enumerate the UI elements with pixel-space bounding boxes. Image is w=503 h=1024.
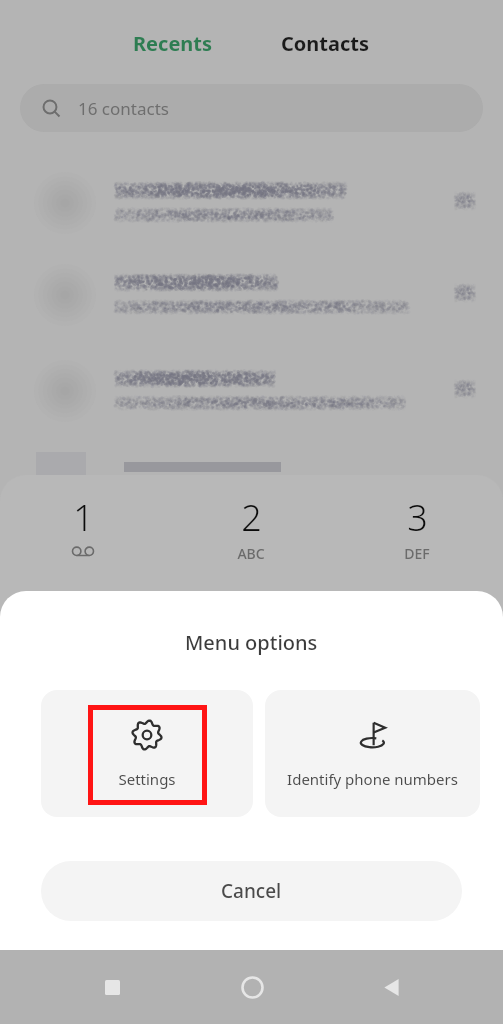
staticText: Settings xyxy=(118,769,176,789)
button[interactable]: Cancel xyxy=(41,861,462,921)
staticText: ABC xyxy=(237,544,265,563)
staticText: Contacts xyxy=(281,30,370,57)
staticText: Menu options xyxy=(185,629,318,656)
button[interactable]: 3 xyxy=(377,493,457,563)
staticText: 1 xyxy=(73,493,94,542)
button[interactable]: Contacts xyxy=(271,28,380,59)
staticText: 3 xyxy=(407,493,428,542)
staticText: Recents xyxy=(133,30,213,57)
staticText: Cancel xyxy=(221,878,282,904)
button[interactable]: Back xyxy=(363,959,419,1015)
other: Identify phone numbers xyxy=(357,719,389,751)
staticText: 16 contacts xyxy=(78,97,169,120)
button[interactable]: Identify phone numbers xyxy=(265,690,480,817)
staticText: 2 xyxy=(241,493,262,542)
button[interactable]: 1 xyxy=(43,493,123,558)
button[interactable] xyxy=(0,252,503,344)
button[interactable]: Recents xyxy=(84,959,140,1015)
other: Settings xyxy=(131,719,163,751)
button[interactable]: 2 xyxy=(211,493,291,563)
staticText: Identify phone numbers xyxy=(287,769,458,789)
button[interactable]: Recents xyxy=(123,28,223,59)
button[interactable] xyxy=(0,348,503,440)
button[interactable] xyxy=(0,160,503,252)
button[interactable]: 16 contacts xyxy=(20,84,483,132)
staticText: DEF xyxy=(404,544,430,563)
button[interactable]: Home xyxy=(224,959,280,1015)
button[interactable]: Settings xyxy=(41,690,253,817)
